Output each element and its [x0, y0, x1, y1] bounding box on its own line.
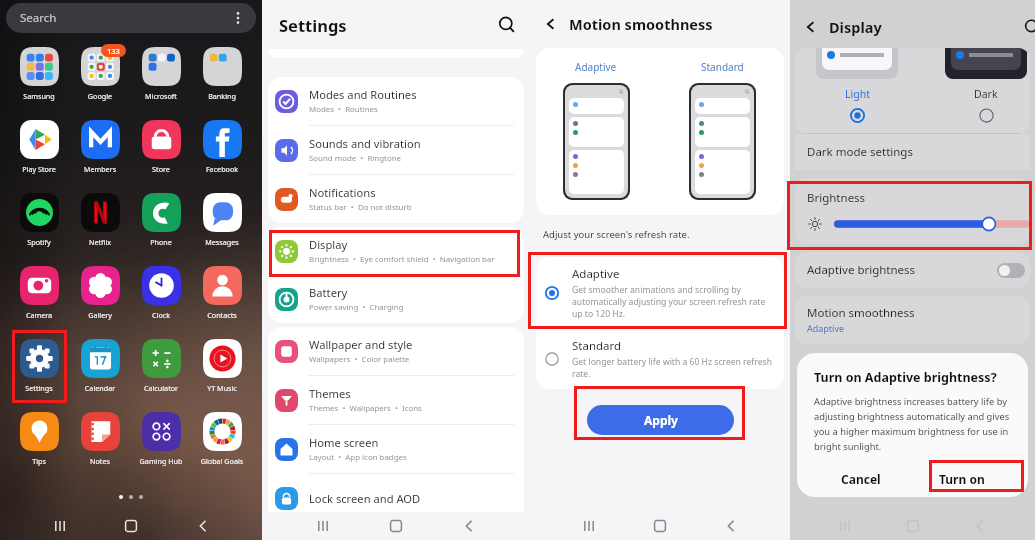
staticText: Themes • Wallpapers • Icons [309, 403, 422, 414]
button[interactable]: Home [901, 514, 925, 538]
staticText: Spotify [9, 237, 69, 247]
button[interactable]: Recents [577, 514, 601, 538]
staticText: Status bar • Do not disturb [309, 202, 412, 213]
button[interactable]: Play Store [9, 120, 69, 174]
button[interactable]: Home screen [268, 425, 524, 473]
button[interactable]: Lock screen and AOD [268, 474, 524, 522]
button[interactable]: Home [648, 514, 672, 538]
button[interactable]: Calculator [131, 339, 191, 393]
staticText: Wallpapers • Color palette [309, 354, 410, 365]
button[interactable]: Home [119, 514, 143, 538]
staticText: Lock screen and AOD [309, 491, 421, 506]
button[interactable]: Store [131, 120, 191, 174]
staticText: Brightness [807, 190, 866, 206]
button[interactable]: Turn on [911, 461, 1013, 497]
staticText: Adaptive [575, 60, 617, 74]
button[interactable]: Spotify [9, 193, 69, 247]
staticText: Display [829, 17, 882, 37]
button[interactable]: Search [6, 3, 256, 33]
button[interactable]: Recents [48, 514, 72, 538]
staticText: Netflix [70, 237, 130, 247]
button[interactable]: Tips [9, 412, 69, 466]
button[interactable]: Notes [70, 412, 130, 466]
staticText: Standard [572, 338, 622, 354]
staticText: Members [70, 164, 130, 174]
staticText: Settings [279, 14, 347, 36]
staticText: Store [131, 164, 191, 174]
button[interactable]: Banking [192, 47, 252, 101]
button[interactable]: Global Goals [192, 412, 252, 466]
button[interactable]: Members [70, 120, 130, 174]
button[interactable]: Facebook [192, 120, 252, 174]
button[interactable]: Back [801, 17, 821, 37]
staticText: Gaming Hub [131, 456, 191, 466]
button[interactable]: Contacts [192, 266, 252, 320]
button[interactable] [834, 216, 1030, 232]
staticText: YT Music [192, 383, 252, 393]
button[interactable]: Cancel [810, 461, 911, 497]
button[interactable]: Gallery [70, 266, 130, 320]
staticText: Dark [974, 87, 998, 101]
button[interactable]: Adaptive [536, 257, 784, 329]
button[interactable]: Search [497, 15, 517, 35]
button[interactable]: Netflix [70, 193, 130, 247]
staticText: Themes [309, 386, 351, 401]
staticText: Adjust your screen's refresh rate. [543, 228, 690, 241]
button[interactable]: Modes and Routines [268, 77, 524, 125]
button[interactable] [979, 108, 994, 123]
button[interactable]: Back [457, 514, 481, 538]
button[interactable]: Samsung [9, 47, 69, 101]
button[interactable]: Recents [833, 514, 857, 538]
button[interactable]: Adaptive brightness [795, 252, 1030, 288]
button[interactable]: Microsoft [131, 47, 191, 101]
button[interactable]: Search [1023, 18, 1035, 37]
staticText: Settings [9, 383, 69, 393]
button[interactable]: Calendar [70, 339, 130, 393]
button[interactable]: Camera [9, 266, 69, 320]
button[interactable]: Google [70, 47, 130, 101]
staticText: Dark mode settings [807, 144, 913, 160]
button[interactable]: Back [719, 514, 743, 538]
staticText: Get longer battery life with a 60 Hz scr… [572, 356, 772, 380]
button[interactable]: Themes [268, 376, 524, 424]
staticText: Phone [131, 237, 191, 247]
staticText: Motion smoothness [569, 14, 713, 34]
button[interactable]: Clock [131, 266, 191, 320]
staticText: Microsoft [131, 91, 191, 101]
button[interactable]: Standard [536, 329, 784, 389]
button[interactable]: Dark mode settings [795, 134, 1030, 170]
staticText: Turn on [939, 471, 985, 487]
button[interactable]: Back [541, 14, 561, 34]
staticText: Home screen [309, 435, 379, 450]
button[interactable]: Settings [9, 339, 69, 393]
staticText: Display [309, 237, 348, 252]
staticText: Global Goals [192, 456, 252, 466]
button[interactable]: Motion smoothness [795, 296, 1030, 344]
button[interactable]: Phone [131, 193, 191, 247]
staticText: Turn on Adaptive brightness? [814, 369, 997, 386]
staticText: Gallery [70, 310, 130, 320]
staticText: Banking [192, 91, 252, 101]
button[interactable]: Back [191, 514, 215, 538]
staticText: Modes • Routines [309, 104, 378, 115]
staticText: Get smoother animations and scrolling by… [572, 284, 772, 320]
staticText: Adaptive brightness increases battery li… [814, 395, 1017, 453]
staticText: Samsung [9, 91, 69, 101]
button[interactable]: Notifications [268, 175, 524, 223]
staticText: Notes [70, 456, 130, 466]
button[interactable]: Battery [268, 275, 524, 323]
button[interactable]: Gaming Hub [131, 412, 191, 466]
button[interactable]: Wallpaper and style [268, 327, 524, 375]
button[interactable]: YT Music [192, 339, 252, 393]
button[interactable]: Display [268, 227, 524, 275]
button[interactable]: Sounds and vibration [268, 126, 524, 174]
staticText: Calculator [131, 383, 191, 393]
staticText: Battery [309, 285, 348, 300]
button[interactable]: More options [230, 10, 246, 26]
button[interactable]: Messages [192, 193, 252, 247]
button[interactable]: Recents [311, 514, 335, 538]
button[interactable] [850, 108, 865, 123]
button[interactable]: Home [384, 514, 408, 538]
button[interactable]: Apply [587, 405, 734, 435]
